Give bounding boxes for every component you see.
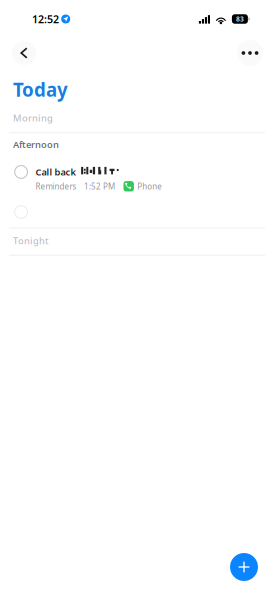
button[interactable]: New reminder: [15, 206, 27, 218]
staticText: Call back: [35, 166, 75, 178]
staticText: Morning: [13, 112, 53, 124]
button[interactable]: Back: [12, 41, 36, 65]
staticText: 1:52 PM: [84, 181, 115, 192]
staticText: Tonight: [13, 234, 49, 247]
staticText: 83: [236, 15, 244, 23]
staticText: Today: [13, 77, 68, 102]
button[interactable]: Mark complete: [15, 166, 27, 178]
button[interactable]: Add reminder: [230, 553, 258, 581]
staticText: 12:52: [32, 12, 59, 26]
staticText: Reminders: [35, 181, 76, 192]
button[interactable]: More: [237, 40, 263, 66]
staticText: Phone: [137, 181, 162, 192]
staticText: Afternoon: [13, 138, 59, 151]
